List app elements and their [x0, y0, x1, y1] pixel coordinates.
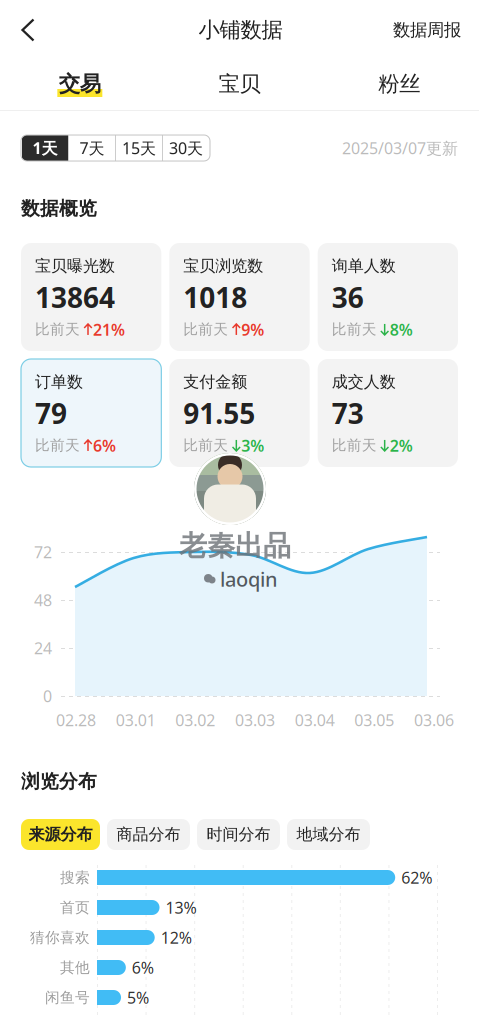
staticText: 12%: [161, 927, 192, 948]
staticText: 62%: [401, 867, 432, 888]
button[interactable]: 数据周报: [382, 8, 472, 52]
staticText: 时间分布: [206, 825, 270, 844]
button[interactable]: 交易: [0, 60, 160, 108]
staticText: 21%: [93, 319, 125, 340]
button[interactable]: 宝贝曝光数: [21, 243, 161, 351]
staticText: 6%: [93, 435, 116, 456]
staticText: 搜索: [60, 868, 90, 886]
staticText: 30天: [169, 137, 203, 159]
button[interactable]: 宝贝浏览数: [169, 243, 310, 351]
button[interactable]: 时间分布: [197, 819, 280, 850]
staticText: 0: [43, 685, 52, 707]
staticText: 宝贝曝光数: [35, 256, 115, 276]
staticText: 9%: [241, 319, 264, 340]
staticText: 1天: [32, 137, 57, 159]
staticText: 2%: [390, 435, 413, 456]
staticText: 03.03: [235, 709, 275, 731]
staticText: 48: [34, 589, 52, 611]
staticText: 03.01: [116, 709, 156, 731]
staticText: 03.05: [354, 709, 394, 731]
button[interactable]: 15天: [116, 135, 162, 161]
button[interactable]: 粉丝: [319, 60, 479, 108]
staticText: 36: [332, 279, 364, 316]
staticText: 02.28: [56, 709, 96, 731]
staticText: 比前天: [332, 320, 377, 338]
staticText: 订单数: [35, 372, 83, 392]
staticText: 比前天: [332, 436, 377, 454]
button[interactable]: 1天: [22, 135, 68, 161]
button[interactable]: 成交人数: [318, 359, 458, 467]
staticText: 03.02: [175, 709, 215, 731]
staticText: 小铺数据: [198, 17, 282, 43]
staticText: 地域分布: [296, 825, 360, 844]
staticText: laoqin: [220, 566, 278, 592]
staticText: 宝贝: [218, 71, 260, 97]
button[interactable]: 宝贝: [160, 60, 319, 108]
button[interactable]: 支付金额: [169, 359, 310, 467]
staticText: 数据周报: [393, 19, 461, 41]
staticText: 其他: [60, 958, 90, 976]
staticText: 91.55: [183, 395, 255, 432]
staticText: 支付金额: [183, 372, 247, 392]
staticText: 13864: [35, 279, 115, 316]
staticText: 2025/03/07更新: [342, 137, 458, 159]
staticText: 5%: [127, 987, 149, 1008]
staticText: 比前天: [35, 320, 80, 338]
staticText: 比前天: [183, 436, 228, 454]
button[interactable]: 商品分布: [107, 819, 190, 850]
staticText: 3%: [241, 435, 264, 456]
button[interactable]: 30天: [163, 135, 209, 161]
staticText: 成交人数: [332, 372, 396, 392]
staticText: 15天: [122, 137, 156, 159]
staticText: 闲鱼号: [45, 988, 90, 1006]
staticText: 商品分布: [116, 825, 180, 844]
staticText: 比前天: [183, 320, 228, 338]
button[interactable]: 返回: [6, 8, 50, 52]
staticText: 72: [34, 541, 52, 563]
staticText: 8%: [390, 319, 413, 340]
staticText: 13%: [165, 897, 196, 918]
staticText: 比前天: [35, 436, 80, 454]
staticText: 03.04: [295, 709, 335, 731]
staticText: 老秦出品: [179, 529, 291, 563]
staticText: 猜你喜欢: [30, 928, 90, 946]
staticText: 浏览分布: [21, 770, 97, 793]
button[interactable]: 地域分布: [287, 819, 370, 850]
staticText: 73: [332, 395, 364, 432]
button[interactable]: 来源分布: [21, 819, 100, 850]
staticText: 24: [34, 637, 52, 659]
staticText: 6%: [132, 957, 154, 978]
staticText: 7天: [79, 137, 104, 159]
staticText: 79: [35, 395, 67, 432]
staticText: 询单人数: [332, 256, 396, 276]
staticText: 1018: [183, 279, 247, 316]
staticText: 宝贝浏览数: [183, 256, 263, 276]
staticText: 来源分布: [28, 825, 92, 844]
staticText: 数据概览: [21, 197, 97, 220]
staticText: 交易: [59, 71, 101, 97]
button[interactable]: 7天: [69, 135, 115, 161]
staticText: 粉丝: [378, 71, 420, 97]
staticText: 03.06: [414, 709, 454, 731]
staticText: 首页: [60, 898, 90, 916]
button[interactable]: 询单人数: [318, 243, 458, 351]
button[interactable]: 订单数: [21, 359, 161, 467]
